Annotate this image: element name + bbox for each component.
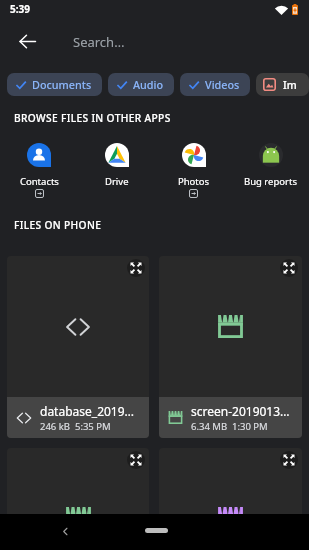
- button[interactable]: Expand: [159, 256, 302, 438]
- button[interactable]: Expand: [159, 448, 302, 550]
- button[interactable]: Drive: [78, 140, 155, 192]
- button[interactable]: Contacts: [0, 140, 78, 201]
- button[interactable]: Expand: [280, 451, 298, 469]
- staticText: BROWSE FILES IN OTHER APPS: [14, 111, 171, 125]
- button[interactable]: Expand: [7, 448, 149, 550]
- button[interactable]: Videos: [180, 73, 250, 96]
- button[interactable]: Expand: [127, 451, 145, 469]
- staticText: Drive: [105, 175, 129, 188]
- button[interactable]: Home: [145, 528, 168, 533]
- staticText: FILES ON PHONE: [14, 218, 102, 232]
- staticText: 246 kB 5:35 PM: [40, 420, 111, 433]
- staticText: Documents: [32, 77, 92, 92]
- button[interactable]: Expand: [127, 259, 145, 277]
- staticText: Contacts: [20, 175, 59, 188]
- button[interactable]: Documents: [7, 73, 102, 96]
- button[interactable]: Expand: [280, 259, 298, 277]
- staticText: Bug reports: [244, 175, 297, 188]
- staticText: 6.34 MB 1:30 PM: [191, 420, 268, 433]
- button[interactable]: Photos: [155, 140, 232, 201]
- staticText: Videos: [205, 77, 240, 92]
- staticText: 5:39: [10, 2, 30, 16]
- staticText: screen-20190131…: [191, 403, 296, 419]
- button[interactable]: Images: [256, 73, 309, 96]
- staticText: Search…: [73, 33, 125, 51]
- button[interactable]: Audio: [108, 73, 174, 96]
- button[interactable]: Bug reports: [232, 140, 309, 192]
- button[interactable]: Back: [5, 19, 49, 63]
- staticText: Images: [283, 78, 300, 92]
- button[interactable]: Expand: [7, 256, 149, 438]
- staticText: Audio: [133, 77, 164, 92]
- staticText: Photos: [178, 175, 210, 188]
- staticText: database_2019…: [40, 403, 135, 419]
- button[interactable]: Back: [54, 520, 76, 542]
